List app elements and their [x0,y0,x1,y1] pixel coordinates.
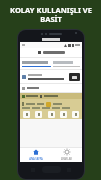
button[interactable] [72,111,79,118]
button[interactable] [35,111,42,118]
button[interactable]: Settings [51,148,82,162]
staticText: KOLAY KULLANIŞLI VE BASİT [10,5,92,25]
button[interactable] [20,84,82,92]
staticText: AYARLAR [61,157,72,161]
button[interactable] [60,111,67,118]
staticText: ANA SAYFA [29,157,43,161]
button[interactable] [20,70,82,83]
button[interactable] [48,111,55,118]
button[interactable] [53,61,80,67]
button[interactable] [22,61,51,67]
button[interactable] [23,111,30,118]
button[interactable]: Home [20,148,51,162]
